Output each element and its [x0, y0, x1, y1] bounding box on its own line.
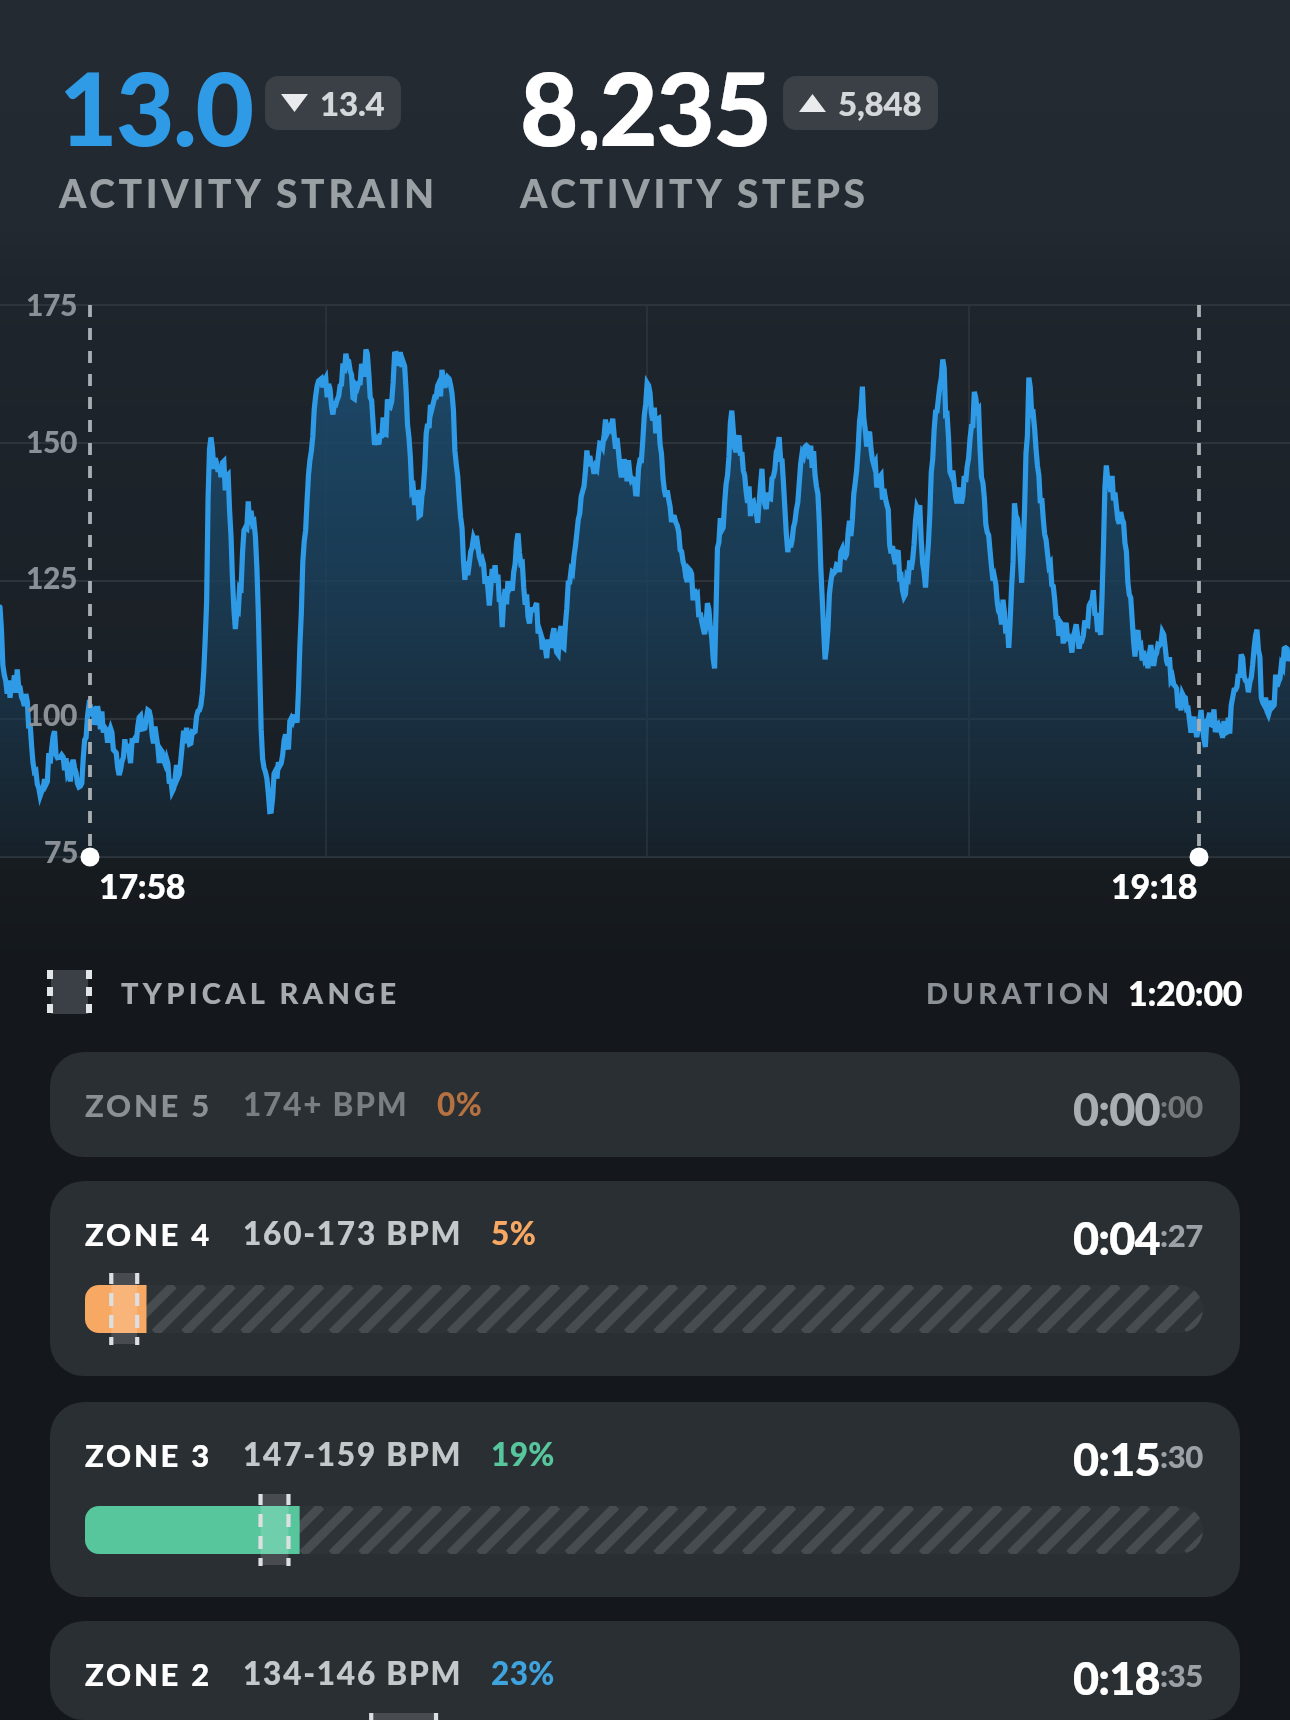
- staticText: 147-159 BPM: [243, 1435, 463, 1473]
- staticText: 13.4: [320, 83, 385, 123]
- staticText: ZONE 5: [85, 1086, 212, 1123]
- staticText: 8,235: [520, 46, 771, 150]
- staticText: ZONE 3: [85, 1436, 212, 1473]
- staticText: ZONE 2: [85, 1655, 212, 1692]
- staticText: 0:18: [1073, 1651, 1160, 1695]
- staticText: 5,848: [838, 83, 922, 123]
- staticText: :30: [1160, 1437, 1203, 1474]
- staticText: 5%: [491, 1214, 537, 1252]
- staticText: 19:18: [1111, 865, 1198, 906]
- staticText: 134-146 BPM: [243, 1654, 463, 1692]
- staticText: 0:04: [1073, 1211, 1160, 1255]
- staticText: 175: [26, 286, 78, 322]
- staticText: 75: [44, 833, 79, 869]
- button[interactable]: ZONE 5: [50, 1052, 1240, 1157]
- staticText: 13.0: [59, 46, 253, 150]
- button[interactable]: ACTIVITY STRAIN: [59, 49, 438, 153]
- staticText: 174+ BPM: [243, 1085, 409, 1123]
- staticText: 150: [26, 423, 78, 459]
- staticText: 125: [26, 559, 78, 595]
- staticText: DURATION: [926, 975, 1114, 1010]
- button[interactable]: ACTIVITY STEPS: [520, 49, 938, 153]
- staticText: 160-173 BPM: [243, 1214, 463, 1252]
- button[interactable]: ZONE 2: [50, 1621, 1240, 1720]
- staticText: TYPICAL RANGE: [121, 975, 401, 1010]
- staticText: ACTIVITY STRAIN: [59, 170, 438, 217]
- staticText: 0%: [437, 1085, 483, 1123]
- staticText: :35: [1160, 1656, 1203, 1693]
- staticText: 19%: [491, 1435, 555, 1473]
- staticText: 1:20:00: [1128, 972, 1243, 1013]
- staticText: :00: [1160, 1087, 1203, 1124]
- staticText: 23%: [491, 1654, 555, 1692]
- staticText: 0:00: [1073, 1082, 1160, 1126]
- staticText: :27: [1160, 1216, 1203, 1253]
- staticText: 0:15: [1073, 1432, 1160, 1476]
- button[interactable]: ZONE 4: [50, 1181, 1240, 1376]
- staticText: ZONE 4: [85, 1215, 212, 1252]
- staticText: 100: [26, 696, 78, 732]
- button[interactable]: ZONE 3: [50, 1402, 1240, 1597]
- staticText: ACTIVITY STEPS: [520, 170, 869, 217]
- staticText: 17:58: [99, 865, 186, 906]
